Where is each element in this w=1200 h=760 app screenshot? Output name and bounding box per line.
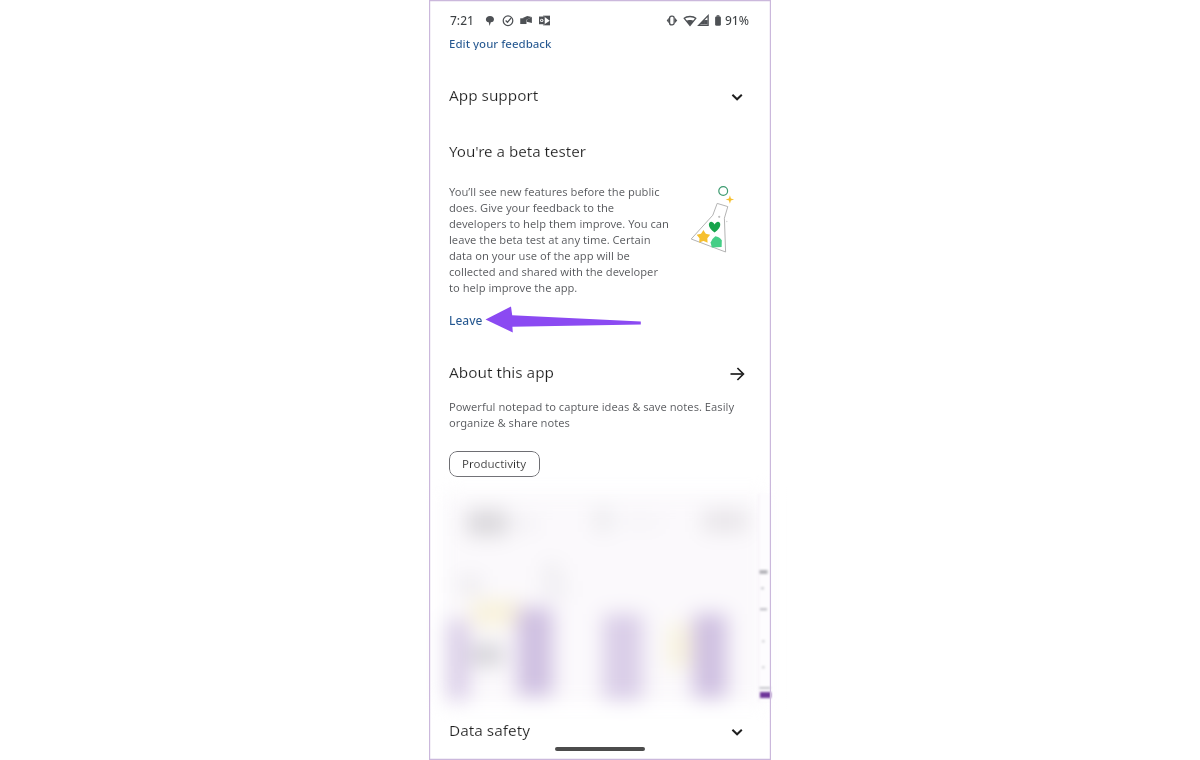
button[interactable]: Data safety: [429, 717, 771, 747]
staticText: Powerful notepad to capture ideas & save…: [449, 399, 749, 430]
button[interactable]: Productivity: [449, 451, 540, 477]
staticText: 7:21: [450, 12, 474, 28]
button[interactable]: Leave: [449, 312, 483, 328]
staticText: Edit your feedback: [449, 39, 552, 50]
staticText: Productivity: [462, 456, 527, 472]
staticText: 91%: [725, 12, 749, 28]
button[interactable]: Edit your feedback: [449, 39, 552, 53]
staticText: App support: [449, 85, 539, 106]
staticText: Data safety: [449, 720, 530, 741]
staticText: Leave: [449, 312, 483, 328]
button[interactable]: App support: [429, 82, 771, 112]
staticText: About this app: [449, 362, 555, 383]
staticText: You’ll see new features before the publi…: [449, 184, 679, 295]
staticText: You're a beta tester: [449, 141, 586, 162]
button[interactable]: About this app: [429, 359, 771, 389]
button[interactable]: App screenshots: [443, 494, 771, 702]
